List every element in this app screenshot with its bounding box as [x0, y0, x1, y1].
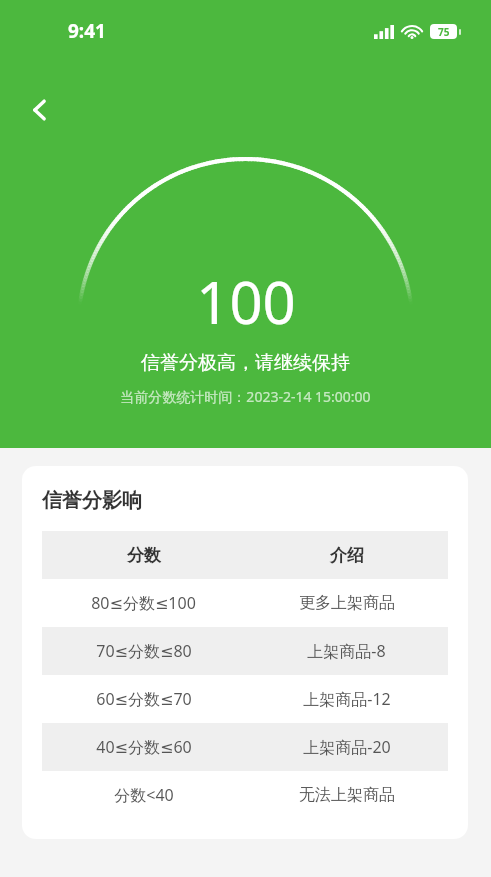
staticText: 更多上架商品	[299, 593, 395, 613]
staticText: 当前分数统计时间：2023-2-14 15:00:00	[120, 387, 371, 406]
button[interactable]: 40≤分数≤60	[42, 723, 448, 771]
button[interactable]: 60≤分数≤70	[42, 675, 448, 723]
staticText: 分数<40	[114, 784, 174, 806]
staticText: 介绍	[330, 545, 364, 566]
staticText: 40≤分数≤60	[96, 736, 192, 758]
button[interactable]: 分数	[42, 531, 448, 579]
staticText: 分数	[127, 545, 161, 566]
staticText: 上架商品-8	[307, 640, 386, 662]
staticText: 75	[438, 25, 450, 39]
staticText: 无法上架商品	[299, 785, 395, 805]
button[interactable]: Back	[14, 84, 66, 136]
button[interactable]: 分数<40	[42, 771, 448, 819]
staticText: 上架商品-20	[303, 736, 391, 758]
staticText: 80≤分数≤100	[91, 592, 196, 614]
staticText: 上架商品-12	[303, 688, 391, 710]
button[interactable]: 80≤分数≤100	[42, 579, 448, 627]
staticText: 9:41	[68, 18, 106, 44]
staticText: 60≤分数≤70	[96, 688, 192, 710]
staticText: 100	[196, 262, 296, 341]
staticText: 70≤分数≤80	[96, 640, 192, 662]
staticText: 信誉分影响	[42, 488, 142, 513]
button[interactable]: 70≤分数≤80	[42, 627, 448, 675]
staticText: 信誉分极高，请继续保持	[141, 351, 350, 375]
